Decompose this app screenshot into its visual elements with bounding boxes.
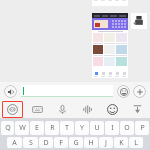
staticText: A	[12, 138, 17, 148]
button[interactable]: Sticker	[2, 101, 23, 118]
button[interactable]: K	[114, 137, 128, 148]
staticText: F	[59, 138, 63, 148]
button[interactable]: D	[39, 137, 53, 148]
staticText: G	[73, 138, 79, 148]
button[interactable]: Voice input	[4, 85, 17, 98]
button[interactable]: Shared screenshot	[92, 13, 128, 78]
staticText: E	[35, 123, 39, 133]
staticText: K	[119, 138, 124, 148]
button[interactable]: F	[54, 137, 68, 148]
button[interactable]: R	[45, 121, 59, 135]
staticText: W	[19, 123, 26, 133]
staticText: I	[111, 123, 114, 133]
button[interactable]: G	[69, 137, 83, 148]
staticText: S	[29, 138, 33, 148]
staticText: P	[140, 123, 145, 133]
button[interactable]: I	[105, 121, 119, 135]
button[interactable]: P	[135, 121, 149, 135]
staticText: L	[134, 138, 138, 148]
button[interactable]: A	[7, 137, 22, 148]
staticText: Q	[5, 123, 11, 133]
button[interactable]: Avatar	[131, 13, 147, 29]
button[interactable]: E	[30, 121, 44, 135]
staticText: H	[88, 138, 94, 148]
button[interactable]: O	[120, 121, 134, 135]
button[interactable]: J	[99, 137, 113, 148]
button[interactable]: Y	[75, 121, 89, 135]
button[interactable]: S	[23, 137, 38, 148]
button[interactable]: More	[133, 85, 146, 98]
button[interactable]: Voice changer	[77, 101, 98, 118]
button[interactable]: Emoji	[117, 85, 130, 98]
staticText: D	[43, 138, 49, 148]
button[interactable]: Emoticon	[102, 101, 123, 118]
staticText: Y	[80, 123, 84, 133]
button[interactable]: Q	[1, 121, 14, 135]
button[interactable]: T	[60, 121, 74, 135]
button[interactable]: Microphone	[52, 101, 73, 118]
button[interactable]: Keyboard	[27, 101, 48, 118]
button[interactable]: H	[84, 137, 98, 148]
button[interactable]	[21, 85, 113, 97]
staticText: J	[105, 138, 107, 148]
button[interactable]: W	[15, 121, 29, 135]
button[interactable]: U	[90, 121, 104, 135]
staticText: T	[65, 123, 69, 133]
staticText: U	[94, 123, 100, 133]
button[interactable]: Download	[127, 101, 148, 118]
staticText: O	[124, 123, 130, 133]
staticText: R	[50, 123, 55, 133]
button[interactable]: L	[129, 137, 143, 148]
